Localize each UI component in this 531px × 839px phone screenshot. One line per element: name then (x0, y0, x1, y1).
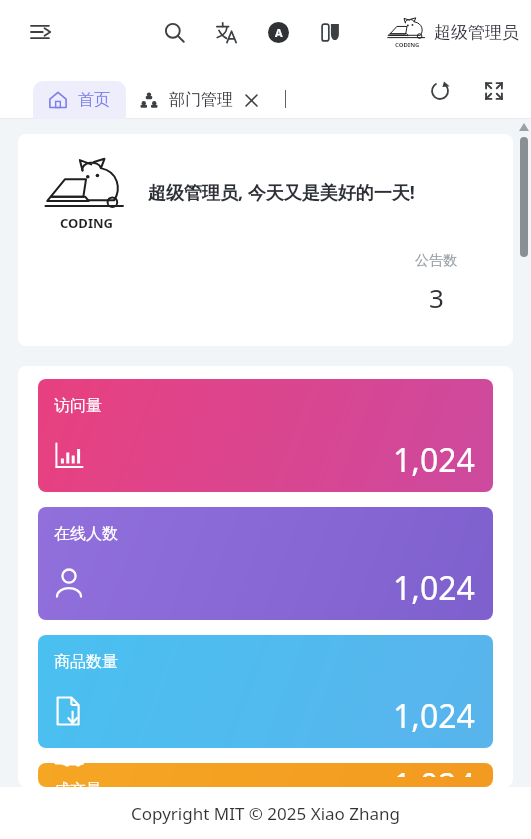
staticText: CODING (395, 41, 420, 49)
staticText: 商品数量 (54, 652, 118, 672)
staticText: Copyright MIT © 2025 Xiao Zhang (131, 802, 400, 825)
button[interactable]: 在线人数 (38, 507, 493, 620)
button[interactable]: Search (155, 13, 193, 51)
staticText: 超级管理员, 今天又是美好的一天! (148, 180, 415, 205)
button[interactable]: 部门管理 (126, 81, 273, 119)
button[interactable]: Refresh (423, 74, 457, 108)
button[interactable]: Fullscreen (477, 74, 511, 108)
staticText: A (275, 25, 283, 40)
button[interactable]: Theme (311, 13, 349, 51)
staticText: 访问量 (54, 396, 102, 416)
button[interactable]: CODING (386, 15, 519, 49)
button[interactable]: 商品数量 (38, 635, 493, 748)
staticText: 在线人数 (54, 524, 118, 544)
staticText: 1,024 (393, 566, 475, 610)
staticText: 1,024 (393, 694, 475, 738)
staticText: 成交量 (54, 780, 102, 787)
button[interactable]: Language (207, 13, 245, 51)
button[interactable]: Toggle menu (24, 15, 58, 49)
staticText: 首页 (78, 90, 110, 110)
button[interactable]: 成交量 (38, 763, 493, 787)
staticText: 1,024 (393, 763, 475, 777)
button[interactable]: Account (259, 13, 297, 51)
staticText: 部门管理 (169, 90, 233, 110)
staticText: 3 (429, 280, 444, 315)
button[interactable]: 首页 (33, 81, 126, 119)
button[interactable]: CODING (18, 134, 513, 346)
staticText: 1,024 (393, 438, 475, 482)
staticText: 公告数 (415, 252, 457, 270)
staticText: 超级管理员 (434, 22, 519, 43)
button[interactable]: Close tab (243, 92, 259, 108)
staticText: CODING (60, 214, 113, 232)
button[interactable]: 访问量 (38, 379, 493, 492)
